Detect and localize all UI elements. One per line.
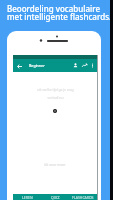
- staticText: vertaal nu: [47, 95, 64, 100]
- button[interactable]: QUIZ: [41, 194, 69, 200]
- button[interactable]: Account: [71, 61, 80, 70]
- button[interactable]: Play audio: [53, 109, 57, 113]
- staticText: LEREN: [22, 195, 33, 200]
- staticText: tik voor meer: [44, 162, 66, 167]
- button[interactable]: Statistics: [80, 61, 89, 70]
- button[interactable]: FLASHCARDS: [69, 194, 97, 200]
- button[interactable]: LEREN: [13, 194, 41, 200]
- staticText: Beoordeling vocabulaire met intelligente…: [7, 3, 112, 22]
- staticText: QUIZ: [51, 195, 60, 200]
- staticText: FLASHCARDS: [72, 195, 94, 200]
- staticText: Beginner: [29, 63, 45, 68]
- staticText: uit welke tijd ga je weg: [37, 87, 74, 92]
- button[interactable]: Back: [14, 61, 24, 71]
- button[interactable]: More options: [89, 62, 96, 69]
